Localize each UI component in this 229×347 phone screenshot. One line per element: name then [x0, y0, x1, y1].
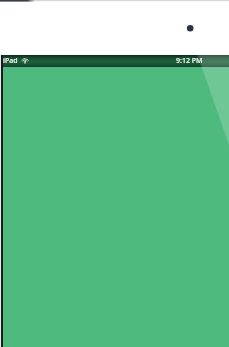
- button[interactable]: App screenshot preview: [0, 55, 229, 347]
- staticText: iPad: [3, 56, 18, 66]
- other: Wi-Fi: [21, 57, 29, 65]
- staticText: 9:12 PM: [176, 56, 203, 66]
